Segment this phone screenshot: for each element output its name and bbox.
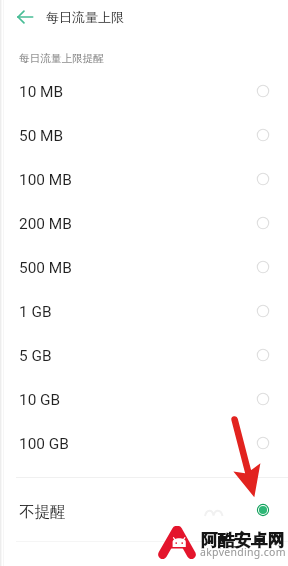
button[interactable]: 100 GB	[0, 422, 288, 466]
button[interactable]: 500 MB	[0, 246, 288, 290]
staticText: 10 MB	[19, 83, 64, 101]
staticText: 10 GB	[19, 391, 61, 409]
staticText: 每日流量上限	[46, 9, 124, 25]
staticText: 500 MB	[19, 259, 72, 277]
button[interactable]: 不提醒	[0, 489, 288, 533]
staticText: akpvending.com	[200, 545, 286, 559]
button[interactable]: 1 GB	[0, 290, 288, 334]
staticText: 100 MB	[19, 171, 72, 189]
button[interactable]: 50 MB	[0, 114, 288, 158]
button[interactable]: Back	[9, 4, 35, 30]
staticText: 不提醒	[19, 502, 66, 521]
button[interactable]: 200 MB	[0, 202, 288, 246]
staticText: 5 GB	[19, 347, 52, 365]
staticText: 每日流量上限提醒	[19, 52, 104, 65]
staticText: 50 MB	[19, 127, 64, 145]
staticText: 100 GB	[19, 435, 69, 453]
button[interactable]: 10 MB	[0, 70, 288, 114]
button[interactable]: 10 GB	[0, 378, 288, 422]
staticText: 200 MB	[19, 215, 72, 233]
staticText: 阿酷安卓网	[201, 530, 284, 551]
staticText: 1 GB	[19, 303, 52, 321]
button[interactable]: 100 MB	[0, 158, 288, 202]
button[interactable]: 5 GB	[0, 334, 288, 378]
